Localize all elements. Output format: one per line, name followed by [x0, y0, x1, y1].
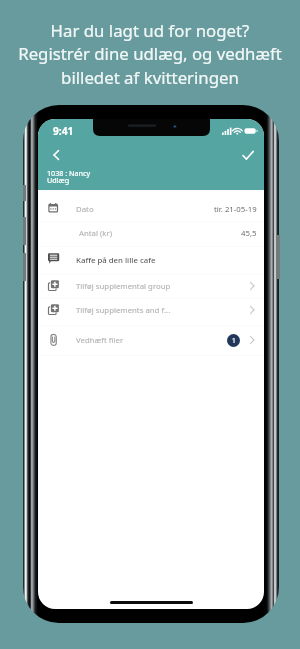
button[interactable]: [38, 197, 264, 221]
staticText: 1: [232, 336, 236, 345]
staticText: Tilføj supplemental group: [76, 281, 171, 292]
staticText: Tilføj supplements and f...: [76, 305, 171, 316]
button[interactable]: Save: [238, 145, 258, 165]
button[interactable]: [38, 274, 264, 298]
staticText: 45,5: [241, 228, 257, 239]
staticText: Antal (kr): [79, 228, 113, 239]
staticText: tir. 21-05-19: [214, 204, 257, 215]
button[interactable]: [38, 328, 264, 352]
staticText: Dato: [76, 204, 94, 215]
button[interactable]: Back: [46, 145, 66, 165]
button[interactable]: [38, 220, 264, 244]
staticText: Vedhæft filer: [76, 335, 124, 346]
button[interactable]: [38, 298, 264, 322]
button[interactable]: [38, 248, 264, 272]
staticText: 9:41: [53, 124, 74, 138]
staticText: 1038 : Nancy Udlæg: [47, 168, 91, 185]
staticText: Har du lagt ud for noget? Registrér dine…: [0, 19, 300, 89]
staticText: Kaffe på den lille cafe: [76, 255, 156, 266]
